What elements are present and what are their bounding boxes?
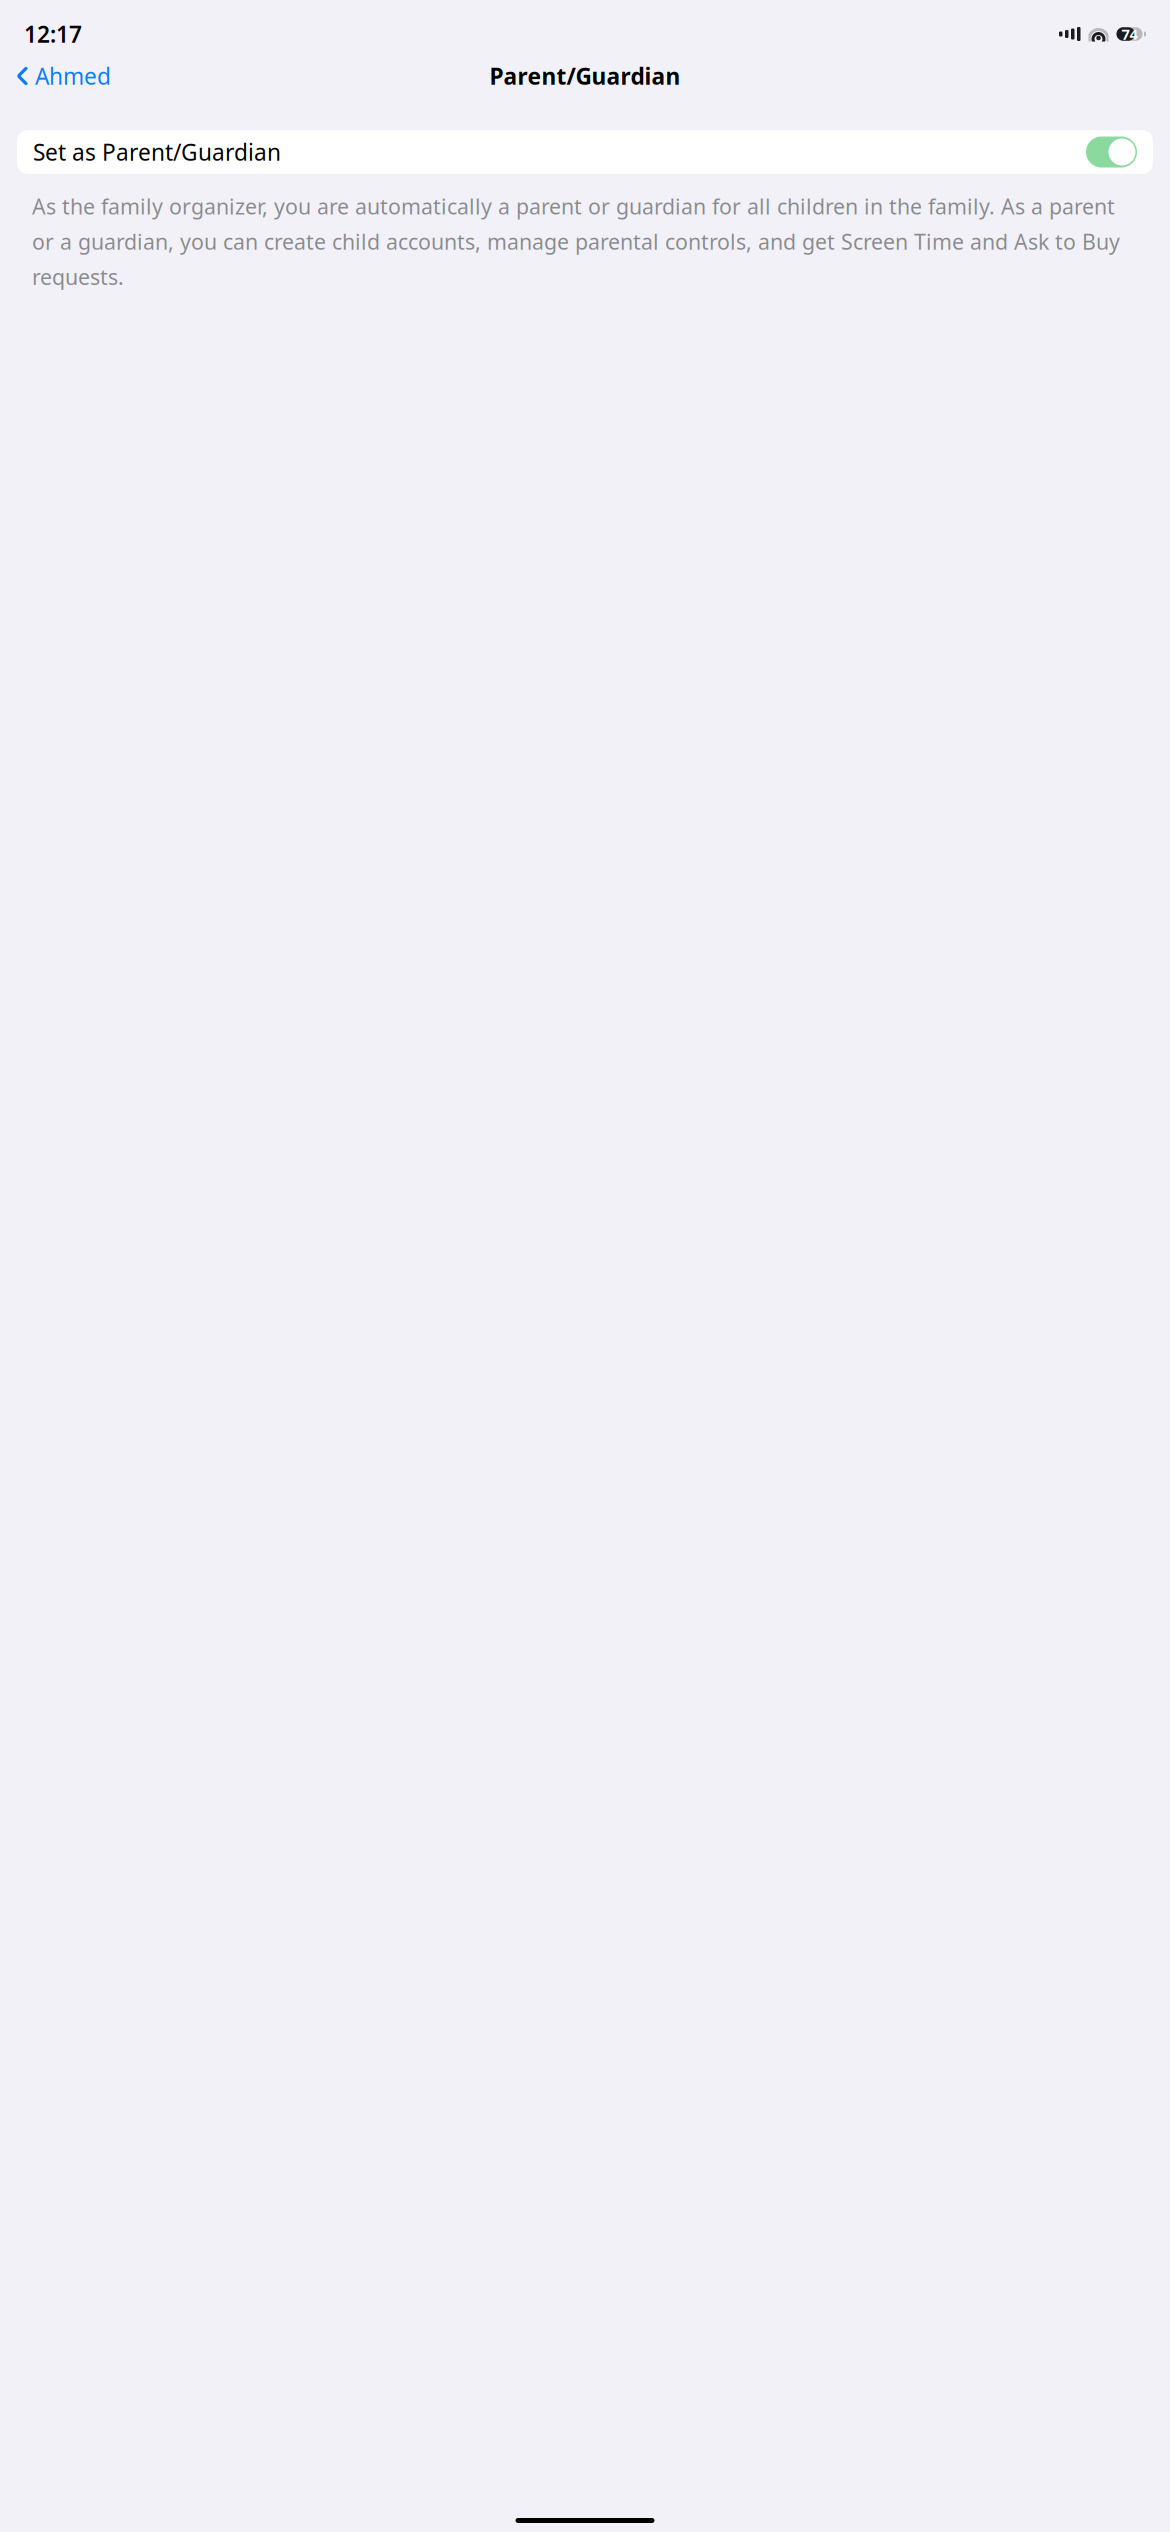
staticText: 74 xyxy=(1121,24,1137,44)
staticText: As the family organizer, you are automat… xyxy=(32,192,1120,291)
button[interactable]: Ahmed xyxy=(8,53,119,99)
staticText: Set as Parent/Guardian xyxy=(33,137,281,167)
staticText: Ahmed xyxy=(35,61,111,91)
button[interactable]: Set as Parent/Guardian xyxy=(17,130,1153,174)
staticText: Parent/Guardian xyxy=(489,61,680,91)
staticText: 12:17 xyxy=(24,19,82,49)
